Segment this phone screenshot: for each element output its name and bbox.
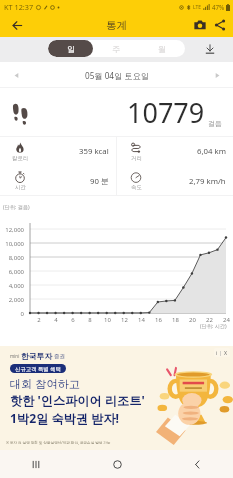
staticText: 2 — [37, 316, 41, 324]
staticText: 핫한 '인스파이어 리조트' — [10, 392, 145, 409]
staticText: 한국투자 — [21, 351, 53, 361]
staticText: mini — [10, 353, 20, 359]
staticText: 10 — [104, 316, 111, 324]
button[interactable]: Back — [7, 15, 27, 35]
staticText: (단위: 시간) — [200, 322, 227, 329]
staticText: 10,000 — [5, 240, 24, 248]
button[interactable]: Recents — [24, 452, 48, 476]
staticText: 12,000 — [5, 226, 24, 234]
staticText: 통계 — [106, 19, 127, 32]
button[interactable]: Previous day — [8, 67, 24, 83]
staticText: 신규고객 특별 혜택 — [15, 365, 61, 372]
staticText: 속도 — [131, 184, 142, 191]
staticText: i — [216, 349, 218, 356]
button[interactable]: 일 — [48, 40, 93, 57]
staticText: 359 kcal — [79, 146, 109, 157]
staticText: KT 12:37 — [4, 2, 34, 12]
staticText: 2,000 — [8, 296, 24, 304]
staticText: 거리 — [131, 155, 142, 162]
button[interactable]: 거리 — [125, 137, 226, 166]
button[interactable]: Back — [185, 452, 209, 476]
staticText: 6,04 km — [197, 146, 226, 157]
staticText: 0 — [20, 310, 24, 318]
staticText: 4,000 — [8, 282, 24, 290]
staticText: 주 — [112, 44, 120, 54]
staticText: X — [224, 349, 228, 356]
button[interactable]: 월 — [139, 40, 185, 57]
staticText: 47% — [212, 3, 225, 11]
button[interactable]: Share — [210, 15, 230, 35]
staticText: 대회 참여하고 — [10, 376, 81, 391]
staticText: 4 — [54, 316, 58, 324]
staticText: ※ 투자 전 설명 청취 및 상품설명서/약관 확인, 원금손실 발생 가능 — [6, 440, 111, 445]
staticText: 14 — [138, 316, 145, 324]
staticText: 20 — [189, 316, 196, 324]
staticText: 90 분 — [90, 176, 109, 187]
staticText: 증권 — [54, 353, 65, 360]
button[interactable]: 주 — [93, 40, 139, 57]
staticText: 6,000 — [8, 268, 24, 276]
button[interactable]: Next day — [209, 67, 225, 83]
staticText: 8 — [88, 316, 92, 324]
button[interactable]: Home — [105, 452, 129, 476]
staticText: 22 — [206, 316, 213, 324]
staticText: 걸음 — [208, 119, 222, 128]
button[interactable]: Camera — [190, 15, 210, 35]
staticText: 16 — [155, 316, 162, 324]
staticText: 일 — [67, 44, 75, 54]
staticText: (단위: 걸음) — [3, 203, 30, 210]
staticText: 시간 — [15, 184, 26, 191]
staticText: LTE — [193, 4, 202, 11]
button[interactable]: mini — [0, 346, 233, 450]
staticText: 8,000 — [8, 254, 24, 262]
staticText: 05월 04일 토요일 — [85, 70, 149, 81]
staticText: 칼로리 — [12, 155, 29, 162]
staticText: 12 — [121, 316, 128, 324]
staticText: 24 — [223, 316, 230, 324]
staticText: 월 — [158, 44, 166, 54]
staticText: 6 — [71, 316, 75, 324]
button[interactable]: i — [214, 348, 230, 357]
button[interactable]: Download — [201, 40, 219, 58]
staticText: 1박2일 숙박권 받자! — [10, 410, 120, 427]
button[interactable]: 시간 — [9, 166, 109, 196]
staticText: 2,79 km/h — [189, 176, 226, 187]
staticText: 10779 — [127, 94, 205, 131]
button[interactable]: 속도 — [125, 166, 226, 196]
staticText: | — [218, 349, 224, 356]
button[interactable]: 칼로리 — [9, 137, 109, 166]
staticText: 18 — [172, 316, 179, 324]
